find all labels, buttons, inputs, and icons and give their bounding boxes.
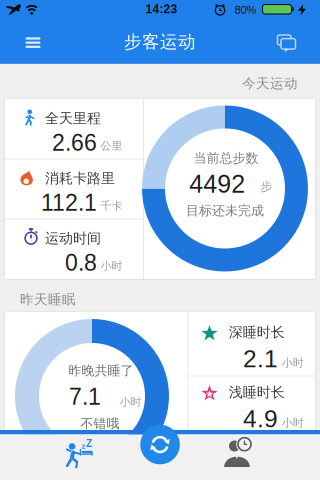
staticText: Z <box>86 438 92 449</box>
staticText: 2.1 <box>243 345 278 372</box>
staticText: 目标还未完成 <box>186 202 264 219</box>
staticText: 小时 <box>282 356 304 370</box>
staticText: 不错哦 <box>80 415 119 432</box>
staticText: 112.1 <box>41 190 97 216</box>
staticText: 7.1 <box>69 384 101 410</box>
staticText: 2.66 <box>52 130 97 156</box>
staticText: 小时 <box>282 416 304 430</box>
staticText: 昨天睡眠 <box>20 291 76 308</box>
staticText: 小时 <box>100 259 122 273</box>
staticText: 小时 <box>120 395 142 409</box>
staticText: 全天里程 <box>45 109 101 127</box>
staticText: 80% <box>234 4 256 16</box>
button[interactable]: z <box>27 434 133 480</box>
staticText: 昨晚共睡了 <box>68 362 133 379</box>
staticText: 当前总步数 <box>193 150 258 166</box>
button[interactable] <box>264 20 308 64</box>
staticText: z <box>81 441 85 450</box>
staticText: 消耗卡路里 <box>45 169 115 187</box>
button[interactable] <box>11 20 55 64</box>
staticText: 步 <box>260 179 272 194</box>
staticText: 14:23 <box>145 2 177 16</box>
button[interactable] <box>184 434 290 480</box>
staticText: 深睡时长 <box>229 323 285 341</box>
staticText: 步客运动 <box>124 31 196 53</box>
staticText: 运动时间 <box>45 229 101 247</box>
button[interactable] <box>140 425 180 464</box>
staticText: 今天运动 <box>242 75 298 92</box>
staticText: 公里 <box>100 139 122 153</box>
staticText: 4.9 <box>243 405 278 432</box>
staticText: 0.8 <box>65 250 97 276</box>
staticText: 浅睡时长 <box>229 383 285 401</box>
staticText: 千卡 <box>100 199 122 213</box>
staticText: 4492 <box>189 170 245 198</box>
